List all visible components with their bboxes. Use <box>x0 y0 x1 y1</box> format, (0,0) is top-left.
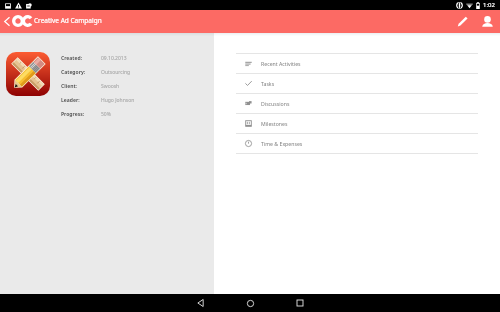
staticText: Progress: <box>61 111 85 118</box>
staticText: Leader: <box>61 97 80 104</box>
button[interactable]: Back <box>175 294 225 312</box>
staticText: Created: <box>61 55 83 62</box>
button[interactable]: Recent apps <box>275 294 325 312</box>
button[interactable]: Tasks <box>236 74 478 93</box>
staticText: 50% <box>101 111 111 118</box>
button[interactable]: Recent Activities <box>236 54 478 73</box>
staticText: 09.10.2013 <box>101 55 127 62</box>
staticText: Category: <box>61 69 86 76</box>
staticText: Recent Activities <box>261 60 301 67</box>
button[interactable]: Edit <box>451 10 474 33</box>
staticText: 1:02 <box>483 1 495 9</box>
button[interactable]: Home <box>225 294 275 312</box>
staticText: Client: <box>61 83 78 90</box>
staticText: Hugo Johnson <box>101 97 135 104</box>
button[interactable]: Time & Expenses <box>236 134 478 153</box>
staticText: Tasks <box>261 80 275 87</box>
staticText: Outsourcing <box>101 69 131 76</box>
staticText: Time & Expenses <box>261 140 303 147</box>
staticText: Swoosh <box>101 83 120 90</box>
button[interactable]: Account <box>476 10 499 33</box>
button[interactable]: Discussions <box>236 94 478 113</box>
button[interactable]: Back <box>0 10 13 33</box>
staticText: Discussions <box>261 100 290 107</box>
staticText: Creative Ad Campaign <box>34 16 102 25</box>
button[interactable]: Milestones <box>236 114 478 133</box>
staticText: Milestones <box>261 120 288 127</box>
